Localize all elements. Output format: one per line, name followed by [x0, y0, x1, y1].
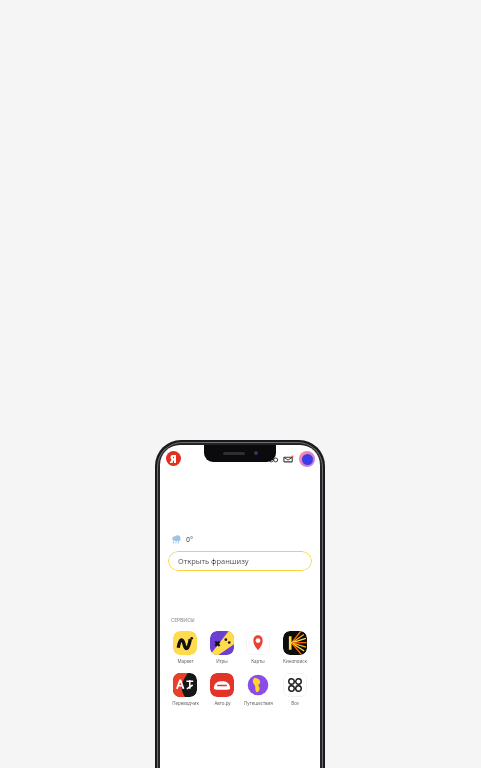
- button[interactable]: Все: [278, 673, 312, 706]
- button[interactable]: Путешествия: [241, 673, 275, 706]
- staticText: Все: [291, 700, 299, 706]
- button[interactable]: Yandex: [166, 451, 181, 466]
- button[interactable]: Переводчик: [168, 673, 202, 706]
- staticText: Путешествия: [244, 700, 273, 706]
- staticText: Авто.ру: [214, 700, 231, 706]
- button[interactable]: Glasses: [269, 455, 278, 464]
- staticText: Маркет: [177, 658, 194, 664]
- staticText: Переводчик: [172, 700, 199, 706]
- button[interactable]: Profile: [299, 451, 315, 467]
- button[interactable]: Mail: [283, 454, 294, 465]
- staticText: Открыть франшизу: [178, 556, 249, 566]
- staticText: Я: [170, 452, 177, 466]
- button[interactable]: Маркет: [168, 631, 202, 664]
- button[interactable]: Открыть франшизу: [168, 551, 312, 571]
- button[interactable]: Игры: [205, 631, 239, 664]
- staticText: 0°: [186, 535, 193, 545]
- button[interactable]: Карты: [241, 631, 275, 664]
- staticText: Игры: [216, 658, 228, 664]
- staticText: Карты: [251, 658, 265, 664]
- staticText: СЕРВИСЫ: [171, 617, 195, 624]
- button[interactable]: Кинопоиск: [278, 631, 312, 664]
- button[interactable]: Авто.ру: [205, 673, 239, 706]
- staticText: Кинопоиск: [283, 658, 307, 664]
